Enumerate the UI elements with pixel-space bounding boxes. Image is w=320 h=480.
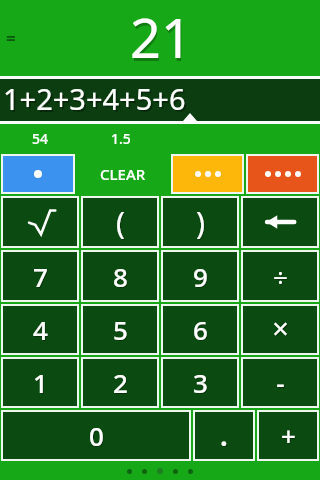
staticText: CLEAR — [100, 164, 146, 184]
button[interactable]: ) — [163, 198, 237, 246]
button[interactable]: 9 — [163, 252, 237, 300]
staticText: 1.5 — [111, 129, 131, 148]
staticText: 21 — [131, 3, 193, 72]
button[interactable]: 8 — [83, 252, 157, 300]
staticText: ) — [197, 203, 206, 244]
staticText: 3 — [193, 365, 208, 400]
button[interactable]: ( — [83, 198, 157, 246]
staticText: - — [276, 365, 285, 400]
button[interactable]: 0 — [3, 412, 189, 459]
staticText: 4 — [34, 313, 49, 348]
staticText: 8 — [113, 259, 128, 294]
button[interactable]: 7 — [3, 252, 77, 300]
button[interactable]: Four dot menu — [248, 156, 317, 192]
staticText: ÷ — [274, 260, 289, 295]
button[interactable]: Three dot menu — [173, 156, 242, 192]
button[interactable]: - — [243, 359, 317, 406]
staticText: 2 — [114, 366, 129, 401]
staticText: 9 — [194, 260, 209, 295]
button[interactable]: 4 — [3, 306, 77, 353]
button[interactable]: 5 — [83, 306, 157, 353]
button[interactable] — [3, 198, 77, 246]
staticText: 8 — [114, 260, 129, 295]
staticText: 5 — [113, 312, 128, 347]
staticText: . — [221, 419, 229, 454]
staticText: . — [220, 418, 228, 453]
staticText: 1+2+3+4+5+6 — [3, 79, 186, 118]
button[interactable]: 2 — [83, 359, 157, 406]
staticText: ) — [196, 202, 205, 243]
staticText: 21 — [130, 0, 192, 72]
staticText: ( — [116, 202, 125, 243]
button[interactable]: CLEAR — [76, 153, 170, 195]
button[interactable]: . — [195, 412, 253, 459]
staticText: 54 — [32, 129, 49, 148]
button[interactable]: ✕ — [243, 306, 317, 353]
staticText: 1 — [34, 366, 49, 401]
staticText: 5 — [114, 313, 129, 348]
staticText: 9 — [193, 259, 208, 294]
staticText: 6 — [194, 313, 209, 348]
staticText: 3 — [194, 366, 209, 401]
staticText: 7 — [33, 259, 48, 294]
staticText: = — [6, 27, 16, 50]
staticText: 0 — [90, 419, 105, 454]
staticText: ( — [117, 203, 126, 244]
staticText: ✕ — [272, 318, 291, 344]
staticText: ÷ — [273, 259, 288, 294]
staticText: - — [277, 366, 286, 401]
staticText: 2 — [113, 365, 128, 400]
button[interactable]: 6 — [163, 306, 237, 353]
button[interactable]: 3 — [163, 359, 237, 406]
staticText: ✕ — [271, 317, 290, 343]
button[interactable]: 1 — [3, 359, 77, 406]
button[interactable]: ÷ — [243, 252, 317, 300]
staticText: 0 — [89, 418, 104, 453]
staticText: + — [282, 419, 297, 454]
button[interactable]: Backspace — [243, 198, 317, 246]
staticText: 1+2+3+4+5+6 — [5, 81, 188, 119]
button[interactable]: + — [259, 412, 317, 459]
staticText: 1 — [33, 365, 48, 400]
staticText: 7 — [34, 260, 49, 295]
button[interactable]: Blue memory — [3, 156, 73, 192]
staticText: 6 — [193, 312, 208, 347]
staticText: 4 — [33, 312, 48, 347]
staticText: + — [281, 418, 296, 453]
